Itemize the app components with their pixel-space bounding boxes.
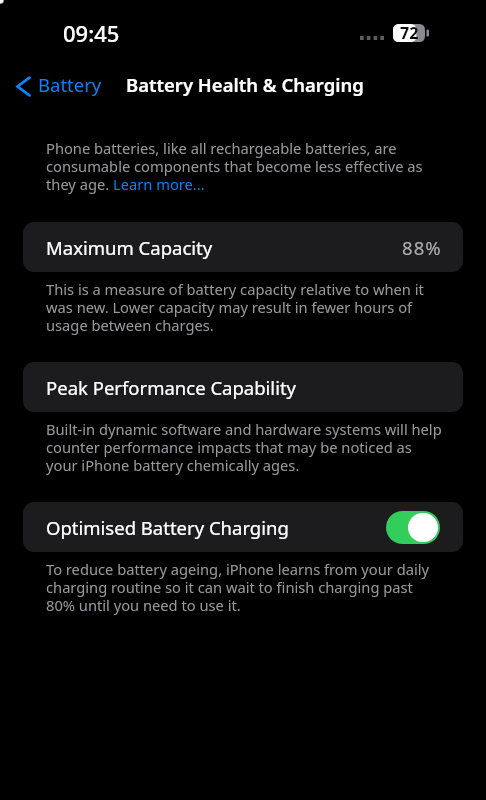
staticText: Peak Performance Capability bbox=[46, 375, 297, 400]
staticText: To reduce battery ageing, iPhone learns … bbox=[46, 559, 442, 615]
staticText: Phone batteries, like all rechargeable b… bbox=[46, 138, 442, 194]
staticText: This is a measure of battery capacity re… bbox=[46, 279, 442, 335]
staticText: Maximum Capacity bbox=[46, 235, 213, 260]
button[interactable]: Optimised Battery Charging, on bbox=[386, 511, 440, 544]
staticText: 09:45 bbox=[63, 18, 120, 48]
button[interactable]: Battery bbox=[7, 68, 109, 104]
staticText: Battery Health & Charging bbox=[126, 72, 364, 97]
button[interactable]: Peak Performance Capability bbox=[23, 362, 463, 412]
staticText: 72 bbox=[400, 22, 419, 44]
button[interactable]: Optimised Battery Charging bbox=[23, 502, 463, 552]
staticText: Built-in dynamic software and hardware s… bbox=[46, 419, 442, 475]
button[interactable]: Maximum Capacity bbox=[23, 222, 463, 272]
staticText: Battery bbox=[38, 72, 102, 97]
staticText: 88% bbox=[402, 235, 442, 260]
staticText: Optimised Battery Charging bbox=[46, 515, 289, 540]
